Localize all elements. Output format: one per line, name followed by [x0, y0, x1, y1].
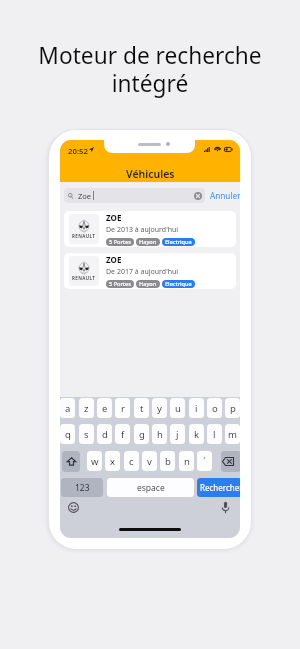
button[interactable]: g: [134, 424, 149, 444]
staticText: x: [110, 455, 116, 468]
button[interactable]: Annuler: [206, 187, 240, 204]
button[interactable]: m: [225, 424, 240, 444]
staticText: d: [102, 428, 108, 441]
button[interactable]: RENAULT: [64, 253, 236, 289]
staticText: s: [84, 428, 89, 441]
button[interactable]: s: [79, 424, 94, 444]
button[interactable]: Retour arrière: [221, 451, 240, 472]
button[interactable]: 123: [61, 478, 103, 497]
button[interactable]: y: [152, 398, 167, 418]
button[interactable]: x: [105, 451, 120, 471]
staticText: v: [147, 455, 152, 468]
staticText: 5 Portes: [109, 238, 131, 246]
staticText: l: [213, 428, 216, 441]
staticText: u: [175, 402, 181, 415]
staticText: espace: [137, 482, 165, 494]
button[interactable]: k: [189, 424, 204, 444]
button[interactable]: p: [225, 398, 240, 418]
button[interactable]: w: [87, 451, 102, 471]
staticText: z: [84, 402, 89, 415]
button[interactable]: e: [97, 398, 112, 418]
staticText: i: [195, 402, 198, 415]
staticText: Véhicules: [126, 167, 175, 181]
button[interactable]: Majuscule: [62, 451, 80, 472]
other: Effacer: [194, 192, 202, 200]
button[interactable]: l: [207, 424, 222, 444]
staticText: f: [121, 428, 125, 441]
button[interactable]: i: [189, 398, 204, 418]
staticText: Rechercher: [200, 482, 240, 493]
staticText: 5 Portes: [109, 280, 131, 288]
button[interactable]: Zoe: [64, 188, 205, 203]
button[interactable]: a: [60, 398, 75, 418]
button[interactable]: v: [142, 451, 157, 471]
staticText: De 2017 à aujourd'hui: [106, 267, 179, 277]
staticText: 20:52: [68, 146, 88, 157]
button[interactable]: t: [134, 398, 149, 418]
button[interactable]: Rechercher: [197, 478, 240, 497]
button[interactable]: c: [124, 451, 139, 471]
staticText: Electrique: [165, 238, 192, 246]
staticText: j: [176, 428, 179, 441]
button[interactable]: b: [160, 451, 175, 471]
staticText: m: [228, 428, 237, 441]
staticText: e: [102, 402, 108, 415]
staticText: Electrique: [165, 280, 192, 288]
staticText: ZOE: [106, 254, 122, 265]
button[interactable]: RENAULT: [64, 211, 236, 247]
staticText: q: [65, 428, 71, 441]
button[interactable]: Emoji: [68, 502, 79, 513]
staticText: w: [91, 455, 99, 468]
staticText: ´: [203, 455, 206, 468]
button[interactable]: h: [152, 424, 167, 444]
button[interactable]: ´: [197, 451, 212, 471]
staticText: y: [157, 402, 162, 415]
button[interactable]: u: [170, 398, 185, 418]
button[interactable]: z: [79, 398, 94, 418]
staticText: h: [157, 428, 163, 441]
button[interactable]: j: [170, 424, 185, 444]
staticText: g: [139, 428, 145, 441]
staticText: n: [184, 455, 190, 468]
staticText: r: [121, 402, 125, 415]
staticText: t: [140, 402, 144, 415]
button[interactable]: n: [179, 451, 194, 471]
staticText: Zoe: [78, 191, 92, 201]
staticText: p: [230, 402, 236, 415]
button[interactable]: espace: [107, 478, 194, 497]
staticText: o: [212, 402, 218, 415]
button[interactable]: Dictée: [221, 501, 230, 514]
staticText: 123: [75, 482, 90, 494]
staticText: a: [65, 402, 71, 415]
staticText: Hayon: [139, 280, 157, 288]
staticText: RENAULT: [72, 275, 96, 281]
staticText: De 2013 à aujourd'hui: [106, 225, 179, 235]
staticText: k: [194, 428, 200, 441]
staticText: Annuler: [210, 190, 240, 201]
staticText: ZOE: [106, 212, 122, 223]
button[interactable]: r: [115, 398, 130, 418]
button[interactable]: f: [115, 424, 130, 444]
staticText: c: [129, 455, 134, 468]
staticText: Hayon: [139, 238, 157, 246]
staticText: RENAULT: [72, 233, 96, 239]
button[interactable]: q: [60, 424, 75, 444]
staticText: Moteur de recherche intégré: [38, 40, 262, 99]
button[interactable]: d: [97, 424, 112, 444]
staticText: b: [165, 455, 171, 468]
button[interactable]: o: [207, 398, 222, 418]
